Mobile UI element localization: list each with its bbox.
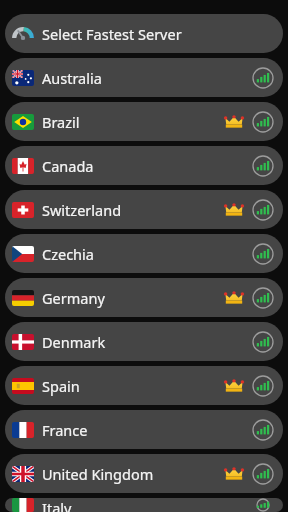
other: Signal strength (252, 67, 274, 89)
staticText: Brazil (42, 112, 80, 132)
staticText: United Kingdom (42, 464, 154, 484)
other: Signal strength (252, 419, 274, 441)
button[interactable]: Czechia (5, 234, 283, 273)
button[interactable]: Switzerland (5, 190, 283, 229)
button[interactable]: United Kingdom (5, 454, 283, 493)
staticText: Canada (42, 156, 94, 176)
button[interactable]: Brazil (5, 102, 283, 141)
button[interactable]: Canada (5, 146, 283, 185)
other: Signal strength (252, 111, 274, 133)
other: Signal strength (252, 199, 274, 221)
button[interactable]: Denmark (5, 322, 283, 361)
staticText: Denmark (42, 332, 106, 352)
other: Signal strength (252, 375, 274, 397)
staticText: Spain (42, 376, 80, 396)
button[interactable]: Select Fastest Server (5, 14, 283, 53)
other: Signal strength (252, 243, 274, 265)
other: Signal strength (252, 287, 274, 309)
staticText: France (42, 420, 88, 440)
other: Signal strength (252, 155, 274, 177)
staticText: Czechia (42, 244, 94, 264)
staticText: Germany (42, 288, 105, 308)
staticText: Italy (42, 498, 72, 512)
button[interactable]: Spain (5, 366, 283, 405)
button[interactable]: Australia (5, 58, 283, 97)
other: Signal strength (252, 498, 274, 512)
staticText: Australia (42, 68, 102, 88)
button[interactable]: France (5, 410, 283, 449)
staticText: Switzerland (42, 200, 122, 220)
other: Signal strength (252, 331, 274, 353)
staticText: Select Fastest Server (42, 24, 182, 44)
button[interactable]: Germany (5, 278, 283, 317)
button[interactable]: Italy (5, 498, 283, 512)
other: Signal strength (252, 463, 274, 485)
